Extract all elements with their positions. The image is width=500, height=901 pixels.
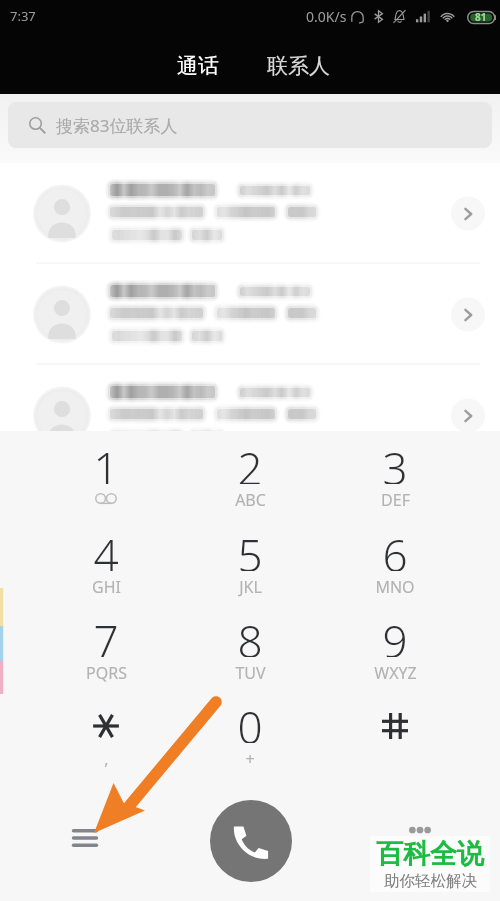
button[interactable]: 3 <box>323 438 467 524</box>
button[interactable]: 通话 <box>163 43 233 89</box>
button[interactable]: 7 <box>34 611 178 697</box>
staticText: 7 <box>93 611 119 657</box>
button[interactable]: 2 <box>178 438 322 524</box>
staticText: GHI <box>92 576 121 598</box>
button[interactable]: 联系人 <box>253 43 344 89</box>
button[interactable]: 0 <box>178 697 322 783</box>
button[interactable]: More options <box>398 808 442 852</box>
staticText: MNO <box>375 576 415 598</box>
button[interactable]: 9 <box>323 611 467 697</box>
button[interactable]: 搜索83位联系人 <box>8 102 492 148</box>
staticText: 0.0K/s <box>306 7 347 26</box>
button[interactable]: 6 <box>323 525 467 611</box>
staticText: TUV <box>235 662 266 684</box>
staticText: 6 <box>382 525 408 571</box>
staticText: DEF <box>381 489 410 511</box>
staticText: 1 <box>93 438 119 484</box>
staticText: 3 <box>382 438 408 484</box>
staticText: 助你轻松解决 <box>384 871 477 891</box>
button[interactable]: Call <box>210 800 292 882</box>
staticText: 4 <box>93 525 119 571</box>
button[interactable]: 1 <box>34 438 178 524</box>
staticText: , <box>104 748 109 770</box>
staticText: 搜索83位联系人 <box>56 114 178 137</box>
staticText: 7:37 <box>10 7 36 25</box>
button[interactable]: Menu <box>63 816 107 860</box>
staticText: 2 <box>237 438 263 484</box>
button[interactable] <box>0 365 500 466</box>
staticText: 5 <box>237 525 263 571</box>
staticText: + <box>245 748 255 770</box>
staticText: JKL <box>239 576 262 598</box>
staticText: 百科全说 <box>376 837 484 871</box>
staticText: ABC <box>235 489 266 511</box>
staticText: WXYZ <box>374 662 417 684</box>
staticText: 9 <box>382 611 408 657</box>
button[interactable] <box>0 264 500 365</box>
staticText: PQRS <box>86 662 127 684</box>
staticText: 通话 <box>177 53 219 79</box>
button[interactable] <box>0 163 500 264</box>
button[interactable]: 4 <box>34 525 178 611</box>
staticText: 0 <box>237 697 263 743</box>
button[interactable] <box>323 697 467 783</box>
staticText: 联系人 <box>267 53 330 79</box>
button[interactable]: 8 <box>178 611 322 697</box>
staticText: 81 <box>475 10 487 24</box>
staticText: 8 <box>237 611 263 657</box>
button[interactable]: 5 <box>178 525 322 611</box>
button[interactable]: , <box>34 697 178 783</box>
